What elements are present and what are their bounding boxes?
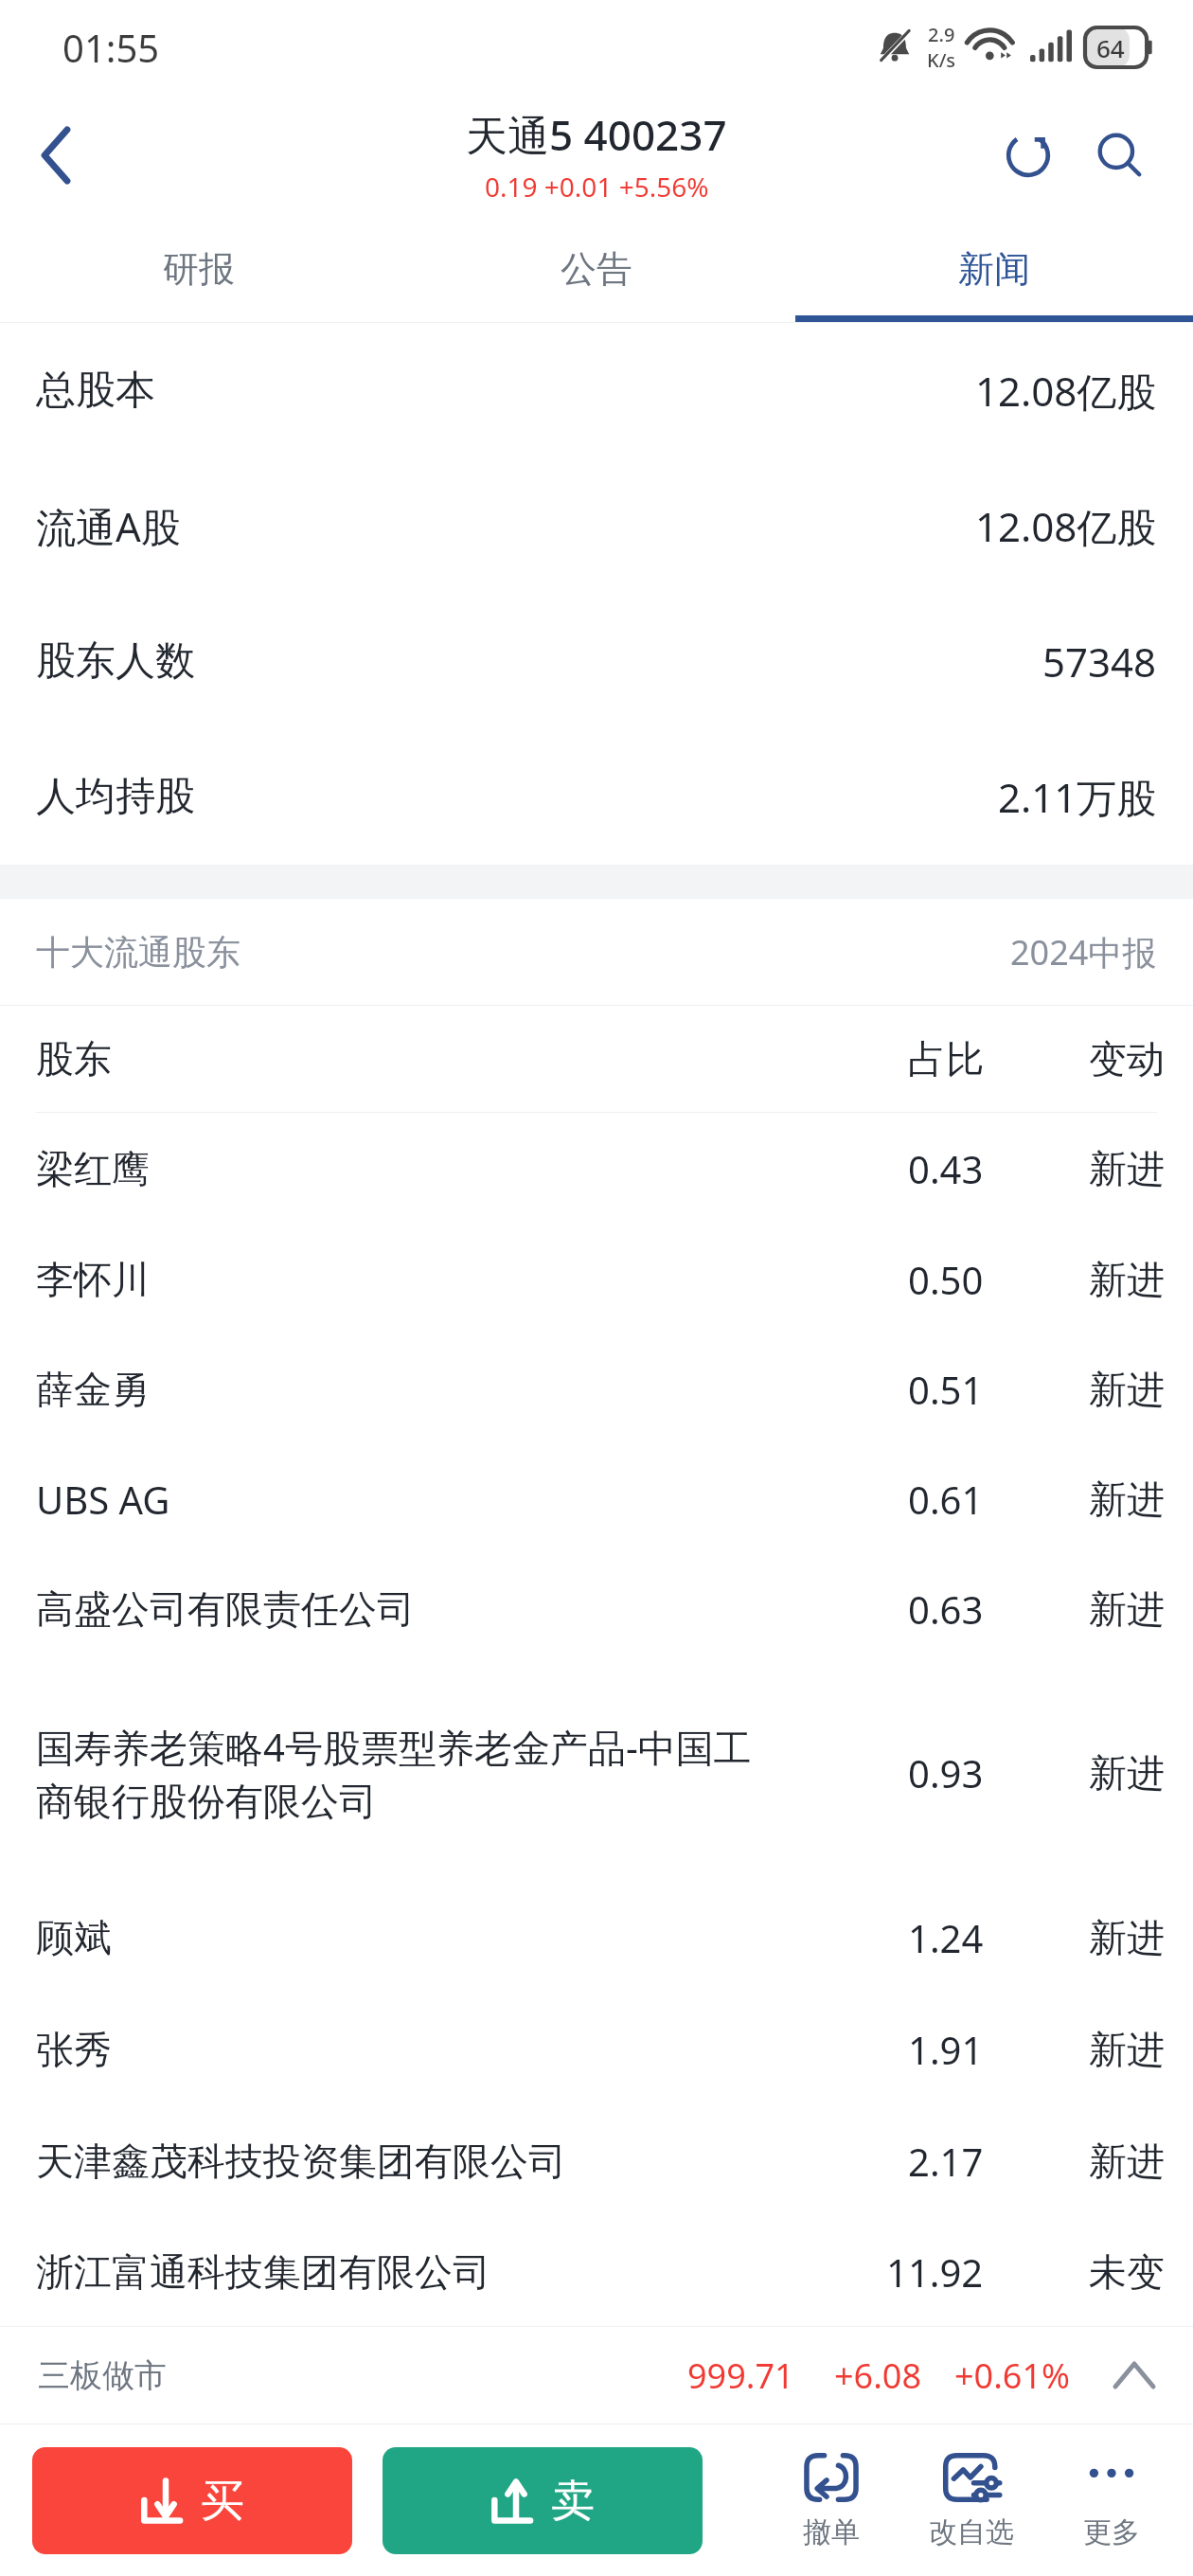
staticText: 股东	[36, 1035, 764, 1082]
staticText: 0.43	[908, 1143, 984, 1194]
staticText: 2.11万股	[998, 770, 1157, 824]
staticText: 12.08亿股	[975, 364, 1157, 418]
staticText: 2024中报	[1010, 929, 1157, 975]
staticText: 0.19 +0.01 +5.56%	[485, 169, 709, 205]
button[interactable]: 梁红鹰	[0, 1113, 1193, 1225]
staticText: 0.61	[908, 1474, 984, 1525]
button[interactable]: Back	[0, 95, 114, 216]
button[interactable]: 天津鑫茂科技投资集团有限公司	[0, 2105, 1193, 2217]
staticText: 国寿养老策略4号股票型养老金产品-中国工商银行股份有限公司	[36, 1721, 764, 1826]
staticText: 0.51	[908, 1364, 984, 1415]
other: Collapse	[1108, 2349, 1161, 2402]
button[interactable]: 张秀	[0, 1994, 1193, 2105]
staticText: 新进	[1089, 1914, 1165, 1961]
staticText: 2.17	[908, 2136, 984, 2187]
staticText: 张秀	[36, 2026, 112, 2073]
staticText: 新进	[1089, 2138, 1165, 2185]
button[interactable]: 流通A股	[0, 458, 1193, 594]
staticText: 十大流通股东	[36, 931, 240, 974]
staticText: K/s	[927, 47, 956, 73]
staticText: 流通A股	[36, 499, 181, 553]
button[interactable]: 十大流通股东	[0, 899, 1193, 1005]
staticText: 57348	[1042, 635, 1157, 689]
staticText: 新进	[1089, 1585, 1165, 1633]
staticText: 64	[1096, 31, 1125, 64]
staticText: 买	[201, 2474, 244, 2529]
staticText: 12.08亿股	[975, 499, 1157, 553]
staticText: 撤单	[803, 2514, 860, 2550]
button[interactable]: 高盛公司有限责任公司	[0, 1554, 1193, 1664]
staticText: 变动	[984, 1035, 1165, 1082]
staticText: 薛金勇	[36, 1366, 150, 1413]
staticText: 新闻	[958, 246, 1030, 292]
button[interactable]: 国寿养老策略4号股票型养老金产品-中国工商银行股份有限公司	[0, 1664, 1193, 1882]
staticText: 浙江富通科技集团有限公司	[36, 2248, 490, 2296]
staticText: 改自选	[929, 2514, 1014, 2550]
staticText: 0.63	[908, 1583, 984, 1635]
staticText: 新进	[1089, 1476, 1165, 1523]
staticText: 新进	[1089, 1256, 1165, 1303]
staticText: 占比	[764, 1035, 984, 1082]
staticText: 卖	[551, 2474, 595, 2529]
button[interactable]: 股东人数	[0, 594, 1193, 729]
staticText: 新进	[1089, 2026, 1165, 2073]
staticText: +0.61%	[954, 2352, 1070, 2399]
button[interactable]: 改自选	[901, 2429, 1042, 2571]
staticText: 新进	[1089, 1749, 1165, 1797]
staticText: 股东人数	[36, 636, 195, 687]
staticText: 天津鑫茂科技投资集团有限公司	[36, 2138, 566, 2185]
button[interactable]: 薛金勇	[0, 1334, 1193, 1444]
button[interactable]: 浙江富通科技集团有限公司	[0, 2217, 1193, 2326]
button[interactable]: 更多	[1042, 2429, 1182, 2571]
button[interactable]: 人均持股	[0, 729, 1193, 865]
button[interactable]: 撤单	[761, 2429, 901, 2571]
staticText: 1.91	[908, 2024, 984, 2075]
staticText: 梁红鹰	[36, 1145, 150, 1192]
button[interactable]: 顾斌	[0, 1882, 1193, 1994]
button[interactable]: UBS AG	[0, 1444, 1193, 1554]
staticText: 未变	[1089, 2248, 1165, 2296]
button[interactable]: 新闻	[795, 216, 1193, 322]
staticText: 新进	[1089, 1145, 1165, 1192]
staticText: +6.08	[834, 2352, 922, 2399]
staticText: 2.9	[928, 22, 955, 47]
button[interactable]: 李怀川	[0, 1225, 1193, 1334]
button[interactable]: 卖	[383, 2447, 703, 2554]
staticText: 0.93	[908, 1747, 984, 1798]
staticText: 顾斌	[36, 1914, 112, 1961]
button[interactable]: 研报	[0, 216, 398, 322]
staticText: 0.50	[908, 1254, 984, 1305]
staticText: 11.92	[886, 2246, 984, 2298]
staticText: 01:55	[62, 22, 160, 73]
staticText: 总股本	[36, 366, 155, 416]
staticText: 999.71	[687, 2352, 794, 2399]
button[interactable]: 三板做市	[0, 2327, 1193, 2424]
button[interactable]: 公告	[398, 216, 795, 322]
staticText: 天通5 400237	[466, 106, 727, 163]
staticText: 1.24	[908, 1912, 984, 1963]
button[interactable]: 买	[32, 2447, 352, 2554]
staticText: 新进	[1089, 1366, 1165, 1413]
staticText: 研报	[163, 246, 235, 292]
staticText: 公告	[561, 246, 632, 292]
staticText: UBS AG	[36, 1474, 170, 1525]
staticText: 人均持股	[36, 772, 195, 822]
staticText: 更多	[1083, 2514, 1140, 2550]
button[interactable]: Search	[1074, 103, 1165, 207]
button[interactable]: 总股本	[0, 323, 1193, 458]
staticText: 高盛公司有限责任公司	[36, 1585, 415, 1633]
staticText: 三板做市	[38, 2355, 167, 2396]
button[interactable]: Refresh	[983, 103, 1074, 207]
staticText: 李怀川	[36, 1256, 150, 1303]
